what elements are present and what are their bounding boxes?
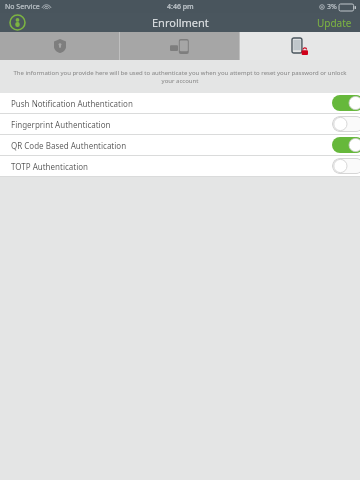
button[interactable]: Fingerprint Authentication: [0, 114, 360, 134]
staticText: 3%: [327, 2, 337, 12]
staticText: QR Code Based Authentication: [11, 140, 328, 151]
button[interactable]: Update: [309, 14, 360, 32]
staticText: The information you provide here will be…: [13, 69, 347, 85]
staticText: TOTP Authentication: [11, 161, 328, 172]
staticText: 4:46 pm: [167, 2, 194, 12]
button[interactable]: Device registration: [120, 32, 240, 60]
staticText: Fingerprint Authentication: [11, 119, 328, 130]
staticText: Update: [317, 16, 352, 30]
staticText: No Service: [5, 2, 40, 12]
button[interactable]: Authentication methods: [240, 32, 360, 60]
button[interactable]: TOTP Authentication: [0, 156, 360, 176]
button[interactable]: Off: [332, 116, 360, 132]
button[interactable]: Off: [332, 158, 360, 174]
button[interactable]: QR Code Based Authentication: [0, 135, 360, 155]
button[interactable]: Push Notification Authentication: [0, 93, 360, 113]
button[interactable]: On: [332, 95, 360, 111]
staticText: Push Notification Authentication: [11, 98, 328, 109]
staticText: Enrollment: [152, 15, 209, 30]
button[interactable]: Security questions: [0, 32, 120, 60]
button[interactable]: On: [332, 137, 360, 153]
button[interactable]: Profile: [8, 13, 27, 32]
